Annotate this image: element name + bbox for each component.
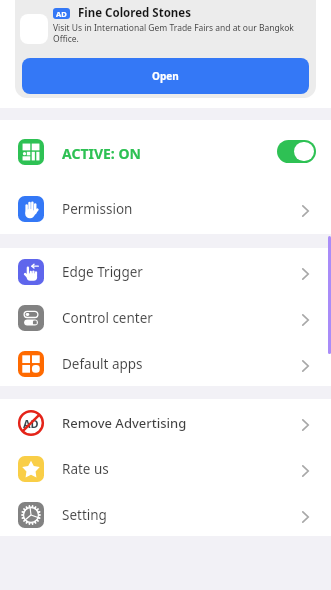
button[interactable]: Control center <box>0 294 331 340</box>
button[interactable]: Permission <box>0 181 331 234</box>
button[interactable]: AD <box>0 399 331 445</box>
staticText: Default apps <box>62 355 143 373</box>
staticText: Control center <box>62 309 153 327</box>
staticText: Setting <box>62 506 107 524</box>
staticText: Fine Colored Stones <box>78 5 191 21</box>
staticText: AD <box>56 9 67 19</box>
staticText: Permission <box>62 200 133 218</box>
button[interactable]: Open <box>22 58 309 94</box>
button[interactable]: Default apps <box>0 340 331 386</box>
button[interactable]: Toggle active <box>277 140 316 163</box>
staticText: AD <box>23 416 39 431</box>
staticText: Visit Us in International Gem Trade Fair… <box>53 22 308 44</box>
staticText: Edge Trigger <box>62 263 143 281</box>
staticText: Rate us <box>62 460 109 478</box>
button[interactable]: Edge Trigger <box>0 248 331 294</box>
staticText: Remove Advertising <box>62 414 187 432</box>
staticText: ACTIVE: ON <box>62 144 141 163</box>
button[interactable]: Setting <box>0 491 331 536</box>
staticText: Open <box>152 69 179 83</box>
button[interactable]: Rate us <box>0 445 331 491</box>
button[interactable]: ACTIVE: ON <box>0 120 331 181</box>
